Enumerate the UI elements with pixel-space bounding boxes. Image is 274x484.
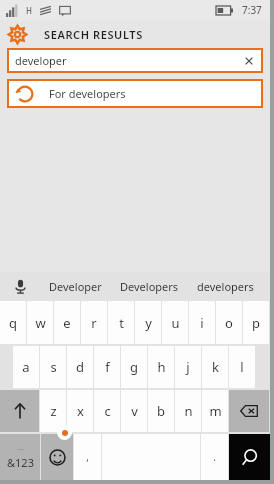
- button[interactable]: x: [67, 390, 93, 432]
- staticText: e: [63, 314, 71, 332]
- staticText: p: [252, 314, 260, 332]
- staticText: q: [9, 314, 17, 332]
- button[interactable]: developers: [188, 272, 263, 300]
- staticText: ,: [86, 450, 89, 464]
- staticText: b: [157, 402, 165, 420]
- button[interactable]: Emoji: [41, 434, 73, 480]
- staticText: d: [76, 358, 84, 376]
- staticText: &123: [7, 455, 34, 470]
- staticText: w: [35, 314, 46, 332]
- staticText: i: [200, 314, 204, 332]
- staticText: a: [22, 358, 30, 376]
- button[interactable]: Shift: [0, 390, 39, 432]
- button[interactable]: l: [229, 346, 255, 388]
- staticText: j: [186, 358, 190, 376]
- button[interactable]: ···: [0, 434, 40, 480]
- button[interactable]: Voice input: [0, 272, 40, 300]
- staticText: h: [157, 358, 166, 376]
- staticText: c: [104, 402, 111, 420]
- button[interactable]: g: [121, 346, 147, 388]
- staticText: l: [240, 358, 244, 376]
- button[interactable]: m: [202, 390, 228, 432]
- staticText: n: [184, 402, 193, 420]
- button[interactable]: h: [148, 346, 174, 388]
- button[interactable]: e: [54, 301, 80, 344]
- button[interactable]: s: [40, 346, 66, 388]
- button[interactable]: Backspace: [229, 390, 269, 432]
- staticText: Developers: [120, 279, 179, 294]
- staticText: y: [145, 314, 152, 332]
- staticText: SEARCH RESULTS: [44, 27, 143, 42]
- staticText: H: [26, 5, 32, 16]
- staticText: s: [50, 358, 57, 376]
- staticText: For developers: [49, 86, 126, 101]
- staticText: k: [212, 358, 219, 376]
- staticText: developer: [15, 53, 67, 68]
- staticText: x: [77, 402, 84, 420]
- button[interactable]: k: [202, 346, 228, 388]
- button[interactable]: f: [94, 346, 120, 388]
- staticText: f: [105, 358, 110, 376]
- button[interactable]: y: [135, 301, 161, 344]
- staticText: 7:37: [242, 3, 262, 17]
- button[interactable]: d: [67, 346, 93, 388]
- button[interactable]: j: [175, 346, 201, 388]
- button[interactable]: q: [0, 301, 26, 344]
- button[interactable]: r: [81, 301, 107, 344]
- staticText: r: [91, 314, 97, 332]
- staticText: o: [225, 314, 233, 332]
- button[interactable]: n: [175, 390, 201, 432]
- button[interactable]: Developer: [40, 272, 111, 300]
- staticText: Developer: [49, 279, 102, 294]
- staticText: v: [131, 402, 138, 420]
- staticText: t: [119, 314, 124, 332]
- button[interactable]: t: [108, 301, 134, 344]
- staticText: developers: [197, 279, 254, 294]
- button[interactable]: Clear search: [242, 54, 256, 68]
- button[interactable]: u: [162, 301, 188, 344]
- button[interactable]: z: [40, 390, 66, 432]
- staticText: g: [130, 358, 138, 376]
- staticText: u: [171, 314, 180, 332]
- button[interactable]: w: [27, 301, 53, 344]
- button[interactable]: i: [189, 301, 215, 344]
- button[interactable]: a: [13, 346, 39, 388]
- button[interactable]: developer: [7, 48, 263, 73]
- staticText: z: [50, 402, 57, 420]
- button[interactable]: For developers: [7, 79, 263, 108]
- button[interactable]: .: [201, 434, 228, 480]
- staticText: ···: [18, 445, 24, 455]
- staticText: .: [213, 450, 216, 464]
- button[interactable]: o: [216, 301, 242, 344]
- button[interactable]: v: [121, 390, 147, 432]
- button[interactable]: p: [243, 301, 269, 344]
- button[interactable]: b: [148, 390, 174, 432]
- button[interactable]: ,: [74, 434, 101, 480]
- button[interactable]: Developers: [111, 272, 188, 300]
- button[interactable]: Search: [229, 434, 270, 480]
- button[interactable]: SEARCH RESULTS: [0, 20, 270, 48]
- staticText: m: [209, 402, 222, 420]
- button[interactable]: c: [94, 390, 120, 432]
